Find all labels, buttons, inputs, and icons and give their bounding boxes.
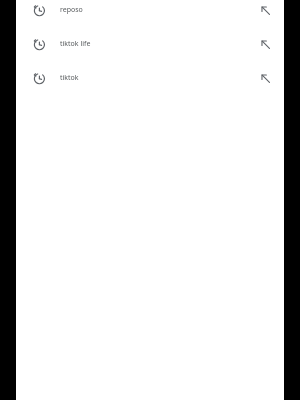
button[interactable]: tiktok life: [16, 34, 284, 54]
button[interactable]: tiktok: [16, 68, 284, 88]
staticText: tiktok: [60, 73, 254, 83]
button[interactable]: Insert suggestion into search field: [254, 68, 276, 88]
staticText: reposo: [60, 5, 254, 15]
button[interactable]: reposo: [16, 0, 284, 20]
button[interactable]: Insert suggestion into search field: [254, 0, 276, 20]
staticText: tiktok life: [60, 39, 254, 49]
button[interactable]: Insert suggestion into search field: [254, 34, 276, 54]
